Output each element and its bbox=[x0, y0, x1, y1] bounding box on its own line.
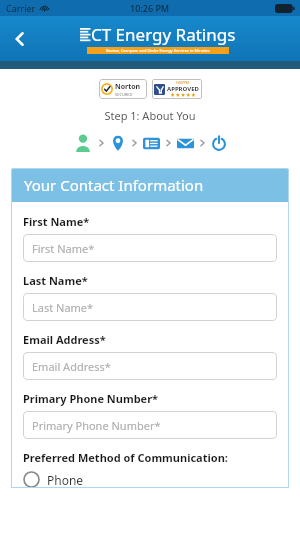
staticText: Primary Phone Number* bbox=[32, 418, 161, 433]
button[interactable]: Last Name* bbox=[23, 293, 277, 321]
button[interactable]: Finish bbox=[211, 135, 227, 151]
staticText: First Name* bbox=[32, 241, 95, 256]
staticText: Email Address* bbox=[32, 359, 111, 374]
staticText: SHOPPER bbox=[176, 81, 190, 85]
button[interactable]: Back bbox=[0, 19, 40, 59]
staticText: Email Address* bbox=[23, 332, 106, 347]
staticText: Norton bbox=[115, 82, 141, 92]
button[interactable]: Email bbox=[177, 135, 194, 152]
staticText: Last Name* bbox=[32, 300, 94, 315]
button[interactable]: Address bbox=[110, 135, 126, 151]
staticText: Step 1: About You bbox=[0, 108, 300, 123]
button[interactable]: About you bbox=[73, 133, 93, 153]
staticText: SECURED bbox=[115, 92, 133, 97]
staticText: Last Name* bbox=[23, 273, 88, 288]
button[interactable]: Email Address* bbox=[23, 352, 277, 380]
staticText: APPROVED bbox=[167, 85, 199, 93]
button[interactable]: Primary Phone Number* bbox=[23, 411, 277, 439]
button[interactable]: Phone bbox=[23, 471, 84, 488]
staticText: Preferred Method of Communication: bbox=[23, 450, 228, 465]
staticText: 10:26 PM bbox=[130, 2, 170, 14]
staticText: Review, Compare and Order Energy Service… bbox=[106, 48, 210, 53]
staticText: First Name* bbox=[23, 214, 90, 229]
button[interactable]: Plan details bbox=[143, 135, 160, 152]
button[interactable]: Norton Secured bbox=[99, 79, 147, 99]
staticText: Your Contact Information bbox=[24, 175, 204, 195]
staticText: Phone bbox=[47, 472, 84, 488]
staticText: Primary Phone Number* bbox=[23, 391, 159, 406]
staticText: Carrier bbox=[6, 2, 36, 14]
staticText: CT Energy Ratings bbox=[91, 23, 236, 46]
button[interactable]: First Name* bbox=[23, 234, 277, 262]
button[interactable]: Shopper Approved bbox=[152, 79, 202, 99]
